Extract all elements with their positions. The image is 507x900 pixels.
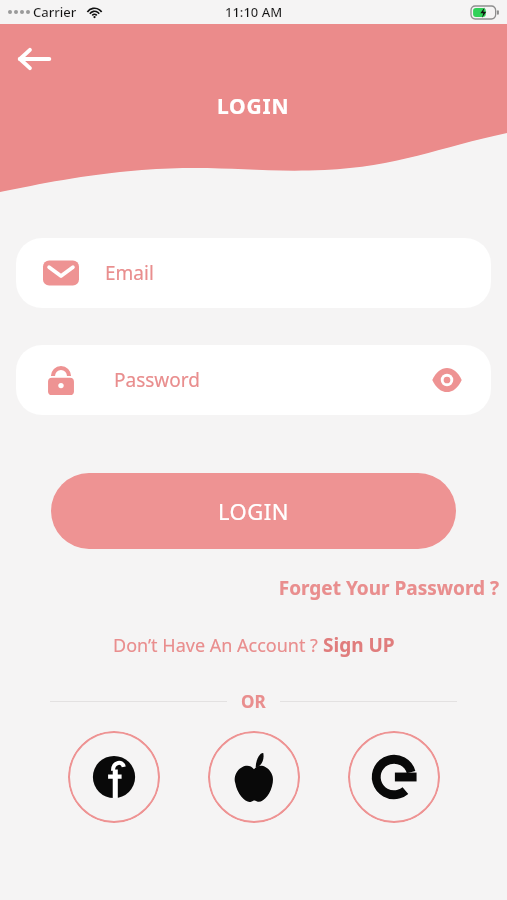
staticText: Don’t Have An Account ? bbox=[113, 633, 323, 658]
staticText: LOGIN bbox=[218, 496, 289, 526]
button[interactable]: Sign in with Apple bbox=[208, 731, 300, 823]
staticText: Email bbox=[105, 260, 154, 286]
button[interactable]: Password bbox=[16, 345, 491, 415]
button[interactable]: Sign in with Facebook bbox=[68, 731, 160, 823]
button[interactable]: Sign UP bbox=[323, 632, 395, 658]
staticText: Password bbox=[114, 367, 200, 393]
staticText: Carrier bbox=[33, 3, 77, 21]
staticText: OR bbox=[241, 690, 266, 713]
staticText: 11:10 AM bbox=[225, 3, 283, 21]
button[interactable]: Sign in with Google bbox=[348, 731, 440, 823]
button[interactable]: LOGIN bbox=[51, 473, 456, 549]
staticText: LOGIN bbox=[217, 92, 290, 121]
staticText: Sign UP bbox=[323, 632, 395, 658]
button[interactable]: Forget Your Password ? bbox=[278, 575, 499, 601]
button[interactable]: Back bbox=[10, 35, 58, 83]
button[interactable]: Show password bbox=[425, 358, 469, 402]
button[interactable]: Email bbox=[16, 238, 491, 308]
staticText: Forget Your Password ? bbox=[278, 575, 499, 601]
